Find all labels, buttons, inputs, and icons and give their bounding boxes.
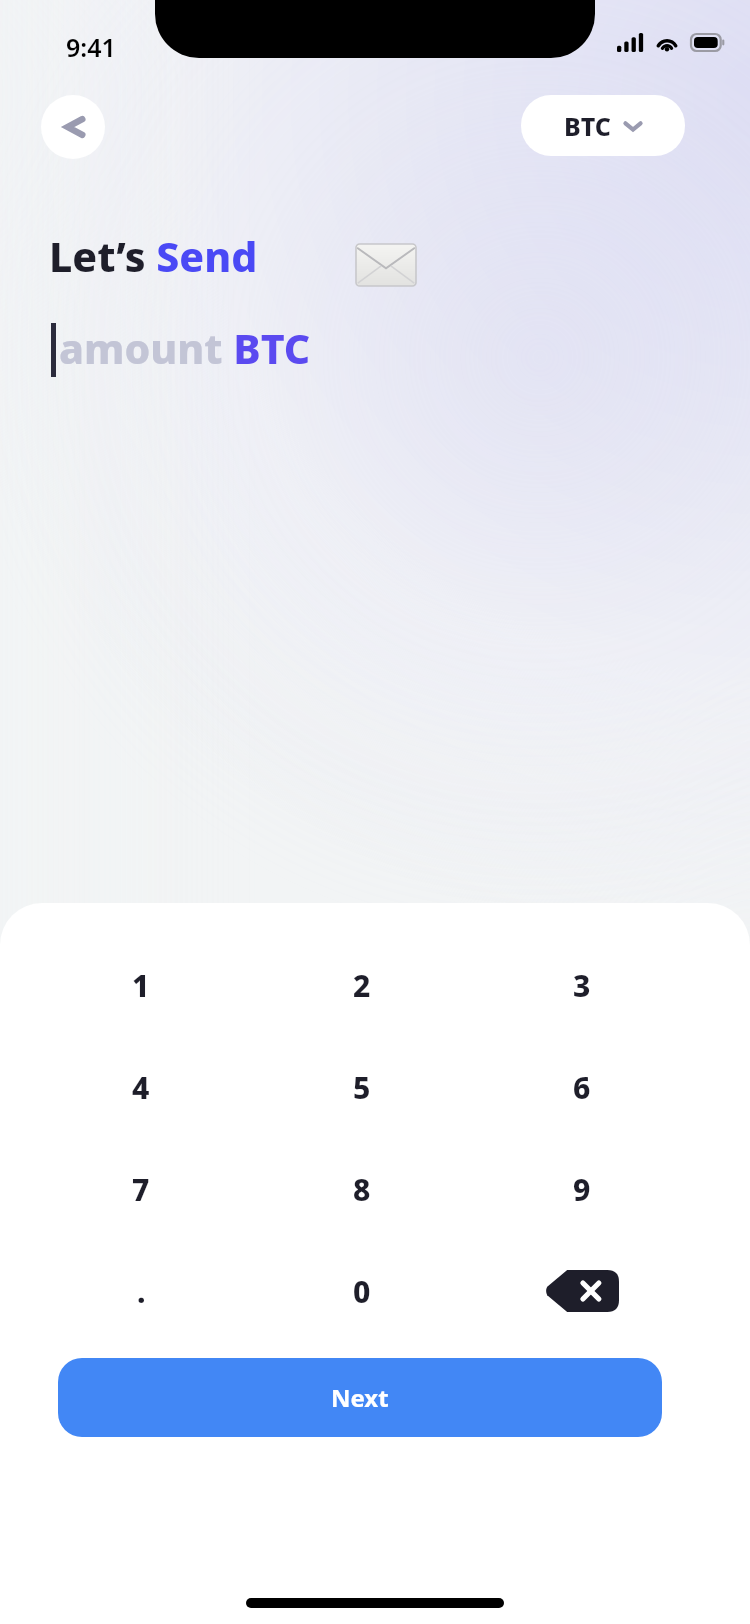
button[interactable]: 0 [250,1240,500,1342]
button[interactable]: 2 [250,934,500,1036]
staticText: Next [331,1381,389,1414]
staticText: 7 [132,1169,150,1210]
staticText: 2 [353,965,371,1006]
other: Backspace [545,1270,619,1312]
button[interactable]: 3 [500,934,750,1036]
staticText: 9:41 [66,30,116,64]
button[interactable]: Backspace [500,1240,750,1342]
button[interactable]: 4 [0,1036,250,1138]
staticText: 4 [132,1067,150,1108]
staticText: 0 [353,1271,371,1312]
staticText: 6 [573,1067,591,1108]
button[interactable]: BTC [521,95,685,156]
staticText: 9 [573,1169,591,1210]
staticText: 1 [132,965,150,1006]
button[interactable]: 6 [500,1036,750,1138]
staticText: Let’s Send [49,228,268,284]
button[interactable]: 5 [250,1036,500,1138]
button[interactable]: Next [58,1358,662,1437]
staticText: 5 [353,1067,371,1108]
staticText: amount BTC [59,320,311,376]
button[interactable]: 1 [0,934,250,1036]
button[interactable]: Back [41,95,105,159]
staticText: . [137,1271,146,1312]
staticText: 3 [573,965,591,1006]
staticText: 8 [353,1169,371,1210]
staticText: BTC [564,109,611,143]
button[interactable]: 8 [250,1138,500,1240]
button[interactable]: 9 [500,1138,750,1240]
button[interactable]: 7 [0,1138,250,1240]
button[interactable]: . [0,1240,250,1342]
